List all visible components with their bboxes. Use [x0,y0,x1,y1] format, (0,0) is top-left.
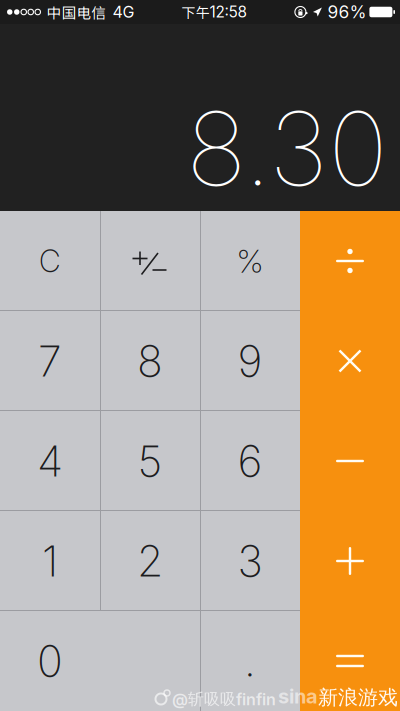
staticText: 1 [42,535,58,587]
staticText: 新浪游戏 [318,685,398,710]
button[interactable]: Multiply [300,311,400,411]
staticText: @斩吸吸finfin [172,689,276,709]
staticText: 3 [237,535,262,587]
staticText: 6 [237,435,262,487]
staticText: 0 [37,635,63,687]
button[interactable]: 7 [0,311,100,411]
button[interactable]: C [0,211,100,311]
button[interactable]: 9 [200,311,300,411]
staticText: 2 [137,535,163,587]
button[interactable]: 3 [200,511,300,611]
staticText: 4G [112,2,134,22]
button[interactable]: 6 [200,411,300,511]
button[interactable]: Add [300,511,400,611]
staticText: 8.30 [186,87,388,210]
button[interactable]: 8 [100,311,200,411]
button[interactable]: . [200,611,300,711]
button[interactable]: % [200,211,300,311]
staticText: . [244,635,256,687]
staticText: 9 [237,335,262,387]
button[interactable]: Equals [300,611,400,711]
staticText: 中国电信 [46,1,106,23]
button[interactable]: Toggle sign [100,211,200,311]
button[interactable]: 1 [0,511,100,611]
staticText: 下午 [181,2,209,22]
staticText: 12:58 [209,3,246,21]
staticText: C [39,242,61,279]
button[interactable]: 4 [0,411,100,511]
staticText: 5 [137,435,162,487]
button[interactable]: 5 [100,411,200,511]
button[interactable]: 2 [100,511,200,611]
staticText: 96% [327,1,366,22]
staticText: 7 [38,335,62,387]
staticText: sina [278,684,318,708]
button[interactable]: 0 [0,611,200,711]
button[interactable]: Divide [300,211,400,311]
staticText: 8 [137,335,163,387]
button[interactable]: Subtract [300,411,400,511]
staticText: % [236,242,263,280]
staticText: 4 [37,435,63,487]
